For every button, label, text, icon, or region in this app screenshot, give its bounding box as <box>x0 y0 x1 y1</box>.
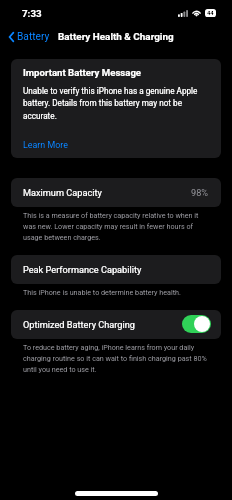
button[interactable]: Learn More <box>23 140 68 150</box>
button[interactable]: Optimized Battery Charging toggle <box>182 315 211 333</box>
staticText: Battery Health & Charging <box>58 31 174 43</box>
staticText: This is a measure of battery capacity re… <box>23 211 208 242</box>
button[interactable]: Maximum Capacity <box>11 178 221 207</box>
staticText: Optimized Battery Charging <box>23 319 135 330</box>
staticText: Important Battery Message <box>23 67 142 78</box>
staticText: Battery <box>17 31 50 43</box>
staticText: Learn More <box>23 140 68 150</box>
staticText: 7:33 <box>22 8 42 19</box>
staticText: To reduce battery aging, iPhone learns f… <box>23 343 208 374</box>
button[interactable]: Peak Performance Capability <box>11 255 221 284</box>
button[interactable]: Optimized Battery Charging <box>11 310 221 339</box>
staticText: 44 <box>207 10 214 17</box>
staticText: 98% <box>191 187 209 198</box>
staticText: Maximum Capacity <box>23 187 102 198</box>
staticText: Unable to verify this iPhone has a genui… <box>23 86 211 121</box>
staticText: Peak Performance Capability <box>23 264 142 275</box>
staticText: This iPhone is unable to determine batte… <box>23 288 181 296</box>
button[interactable]: Battery <box>0 28 54 46</box>
